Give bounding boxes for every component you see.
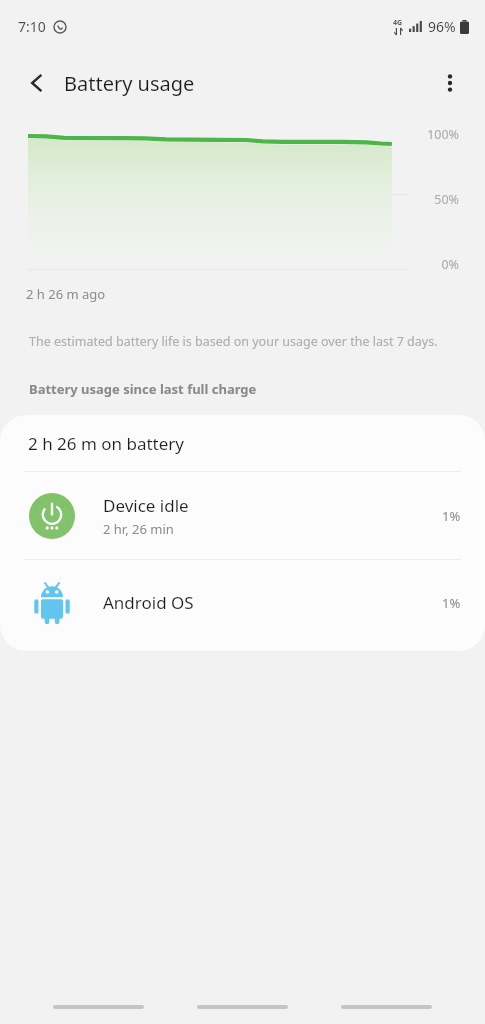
staticText: 2 h 26 m on battery [28, 432, 185, 455]
staticText: 1% [442, 507, 461, 525]
button[interactable]: More options [427, 60, 473, 106]
staticText: 2 hr, 26 min [103, 520, 174, 538]
staticText: 2 h 26 m ago [26, 285, 106, 303]
button[interactable]: Navigation [53, 1005, 144, 1009]
staticText: 1% [442, 594, 461, 612]
staticText: Battery usage since last full charge [29, 380, 257, 398]
button[interactable]: Navigation [197, 1005, 288, 1009]
staticText: 7:10 [18, 17, 46, 36]
staticText: 96% [428, 17, 456, 36]
staticText: Device idle [103, 494, 189, 517]
staticText: The estimated battery life is based on y… [29, 333, 438, 350]
button[interactable]: Device idle [0, 472, 485, 559]
staticText: 4G [393, 18, 403, 28]
button[interactable]: Back [14, 60, 60, 106]
button[interactable]: Navigation [341, 1005, 432, 1009]
button[interactable]: Android OS [0, 560, 485, 645]
staticText: Battery usage [64, 70, 195, 97]
staticText: Android OS [103, 591, 194, 614]
staticText: 50% [401, 191, 459, 208]
staticText: 0% [401, 256, 459, 273]
staticText: 100% [401, 126, 459, 143]
